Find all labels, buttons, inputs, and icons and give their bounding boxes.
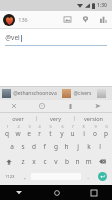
button[interactable]: Enter [93, 169, 111, 184]
button[interactable]: Shift [1, 154, 17, 169]
staticText: 1 [6, 124, 9, 129]
staticText: y [60, 129, 64, 138]
staticText: very [50, 115, 61, 122]
staticText: h [64, 142, 69, 151]
button[interactable]: Backspace [94, 154, 111, 169]
button[interactable]: Send [84, 100, 112, 112]
button[interactable]: Add poll [98, 14, 109, 25]
staticText: @vel [5, 33, 20, 42]
button[interactable]: m [83, 154, 94, 169]
button[interactable]: 5 [45, 123, 56, 139]
staticText: f [43, 142, 46, 151]
staticText: e [27, 129, 31, 138]
staticText: t [49, 129, 52, 138]
button[interactable]: a [6, 139, 17, 154]
staticText: s [21, 142, 25, 151]
button[interactable] [97, 89, 106, 98]
staticText: r [38, 129, 41, 138]
staticText: a [10, 142, 14, 151]
button[interactable]: ?123 [1, 169, 19, 184]
staticText: k [87, 142, 91, 151]
staticText: l [99, 142, 101, 151]
button[interactable]: z [17, 154, 28, 169]
staticText: c [43, 157, 47, 166]
button[interactable]: Back [0, 185, 38, 200]
button[interactable]: Close [0, 100, 28, 112]
button[interactable]: 4 [34, 123, 45, 139]
button[interactable]: j [72, 139, 83, 154]
staticText: 7 [71, 124, 74, 129]
staticText: v [54, 157, 58, 166]
button[interactable]: Gif [56, 100, 84, 112]
button[interactable]: Home [38, 185, 75, 200]
staticText: 6 [61, 124, 64, 129]
button[interactable]: k [83, 139, 94, 154]
staticText: o [93, 129, 97, 138]
staticText: j [77, 142, 79, 151]
button[interactable]: n [72, 154, 83, 169]
staticText: p [104, 129, 108, 138]
button[interactable]: Recents [75, 185, 112, 200]
button[interactable]: 9 [89, 123, 100, 139]
button[interactable]: 0 [100, 123, 111, 139]
button[interactable]: 3 [23, 123, 34, 139]
staticText: g [54, 142, 58, 151]
button[interactable]: h [61, 139, 72, 154]
staticText: d [32, 142, 36, 151]
staticText: , [24, 173, 26, 181]
button[interactable]: 7 [67, 123, 78, 139]
button[interactable]: @civers [62, 89, 92, 98]
staticText: x [32, 157, 36, 166]
staticText: 0 [105, 124, 108, 129]
button[interactable]: v [50, 154, 61, 169]
button[interactable]: d [28, 139, 39, 154]
button[interactable]: 1 [1, 123, 12, 139]
staticText: @ethanschoonova [13, 90, 57, 97]
button[interactable]: 2 [12, 123, 23, 139]
button[interactable]: c [39, 154, 50, 169]
staticText: version [84, 115, 103, 122]
button[interactable]: @vel [5, 33, 107, 46]
staticText: z [21, 157, 25, 166]
staticText: 8 [82, 124, 85, 129]
staticText: n [75, 157, 80, 166]
staticText: 3 [28, 124, 31, 129]
staticText: 4 [38, 124, 41, 129]
staticText: 1:30 [97, 2, 107, 9]
staticText: i [83, 129, 85, 138]
staticText: 5 [49, 124, 52, 129]
staticText: b [65, 157, 69, 166]
button[interactable]: over [0, 113, 36, 123]
staticText: 136 [18, 16, 28, 23]
button[interactable]: Add location [80, 14, 91, 25]
staticText: 9 [94, 124, 97, 129]
button[interactable]: Add photo [62, 14, 73, 25]
staticText: q [5, 129, 9, 138]
button[interactable]: @ethanschoonova [2, 89, 57, 98]
button[interactable]: Profile [3, 14, 15, 26]
button[interactable]: b [61, 154, 72, 169]
button[interactable]: l [94, 139, 105, 154]
button[interactable]: f [39, 139, 50, 154]
button[interactable]: 6 [56, 123, 67, 139]
button[interactable]: 8 [78, 123, 89, 139]
staticText: . [87, 173, 89, 181]
staticText: 2 [17, 124, 20, 129]
staticText: u [70, 129, 75, 138]
button[interactable]: version [75, 113, 112, 123]
button[interactable]: s [17, 139, 28, 154]
button[interactable]: very [37, 113, 74, 123]
staticText: @civers [73, 90, 92, 97]
button[interactable]: g [50, 139, 61, 154]
staticText: ?123 [5, 174, 15, 180]
staticText: over [12, 115, 24, 122]
button[interactable]: x [28, 154, 39, 169]
button[interactable]: Emoji [28, 100, 56, 112]
staticText: m [85, 157, 92, 166]
button[interactable]: , [19, 169, 30, 184]
staticText: w [15, 129, 21, 138]
